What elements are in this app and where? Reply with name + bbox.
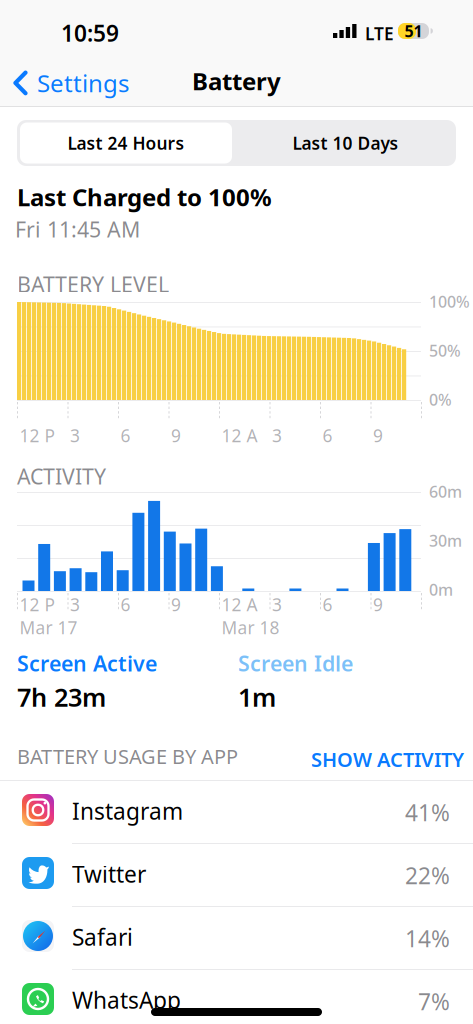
staticText: 3 [272, 593, 282, 616]
staticText: Fri 11:45 AM [15, 215, 140, 243]
staticText: ACTIVITY [17, 462, 106, 490]
staticText: 51 [404, 20, 422, 42]
staticText: 3 [272, 424, 282, 447]
staticText: 41% [405, 797, 450, 827]
button[interactable]: Safari [0, 907, 473, 970]
staticText: Safari [72, 922, 133, 952]
staticText: 9 [373, 424, 383, 447]
staticText: 50% [429, 340, 461, 361]
staticText: 6 [120, 424, 130, 447]
staticText: Twitter [72, 859, 146, 889]
staticText: 0% [429, 389, 452, 410]
button[interactable]: Instagram [0, 781, 473, 844]
staticText: Mar 18 [221, 616, 279, 639]
button[interactable]: Last 10 Days [235, 120, 456, 166]
staticText: Last Charged to 100% [17, 181, 272, 213]
staticText: 6 [322, 424, 332, 447]
staticText: 6 [120, 593, 130, 616]
staticText: Instagram [72, 796, 183, 826]
button[interactable]: Last 24 Hours [17, 119, 235, 166]
staticText: Screen Active [17, 649, 157, 677]
staticText: 0m [429, 579, 453, 600]
staticText: 10:59 [61, 18, 119, 48]
staticText: 22% [405, 860, 450, 890]
button[interactable]: Settings [0, 60, 142, 106]
staticText: Battery [192, 65, 281, 97]
staticText: Mar 17 [19, 616, 77, 639]
staticText: 1m [238, 680, 276, 714]
staticText: Settings [37, 67, 129, 99]
staticText: 6 [322, 593, 332, 616]
staticText: Screen Idle [238, 649, 353, 677]
staticText: 3 [70, 424, 80, 447]
staticText: 14% [405, 923, 450, 953]
staticText: SHOW ACTIVITY [311, 746, 464, 773]
staticText: 12 A [221, 593, 257, 616]
staticText: 9 [171, 593, 181, 616]
staticText: 7h 23m [17, 680, 106, 714]
staticText: 12 P [19, 424, 54, 447]
staticText: WhatsApp [72, 985, 181, 1015]
staticText: 100% [429, 291, 470, 312]
staticText: 9 [373, 593, 383, 616]
staticText: BATTERY USAGE BY APP [17, 743, 238, 770]
button[interactable]: Twitter [0, 844, 473, 907]
staticText: 9 [171, 424, 181, 447]
staticText: LTE [365, 22, 394, 45]
staticText: 7% [418, 986, 450, 1016]
staticText: 30m [429, 530, 462, 551]
staticText: 12 A [221, 424, 257, 447]
staticText: 3 [70, 593, 80, 616]
staticText: BATTERY LEVEL [17, 270, 169, 298]
staticText: 12 P [19, 593, 54, 616]
staticText: 60m [429, 481, 462, 502]
staticText: Last 24 Hours [67, 131, 184, 154]
button[interactable]: SHOW ACTIVITY [303, 741, 472, 778]
staticText: Last 10 Days [292, 131, 398, 154]
button[interactable]: WhatsApp [0, 970, 473, 1024]
